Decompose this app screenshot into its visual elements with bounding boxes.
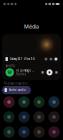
staticText: Réglages rapides	[3, 82, 27, 85]
button[interactable]: Wi-Fi	[3, 96, 15, 108]
button[interactable]: Location	[18, 111, 30, 123]
button[interactable]: Galaxy S21 Ultra 5G	[2, 55, 61, 63]
button[interactable]: Auto-rotate	[48, 96, 60, 108]
button[interactable]: Airplane mode	[33, 111, 45, 123]
staticText: Galaxy S21 Ultra 5G	[10, 57, 35, 61]
button[interactable]: Sortie audio	[2, 86, 31, 94]
button[interactable]: Flashlight	[3, 111, 15, 123]
button[interactable]: Next track	[55, 71, 57, 74]
button[interactable]: Bluetooth	[18, 96, 30, 108]
staticText: Média	[24, 23, 39, 30]
staticText: le piratage peut nuire	[16, 69, 35, 72]
button[interactable]: Play	[46, 69, 52, 75]
button[interactable]: Previous track	[41, 71, 44, 74]
button[interactable]: Dark mode	[18, 126, 30, 138]
button[interactable]: Sound	[33, 96, 45, 108]
button[interactable]: Screen record	[33, 126, 45, 138]
staticText: Booba	[16, 72, 25, 76]
button[interactable]: Battery saver	[3, 126, 15, 138]
button[interactable]: Hotspot	[48, 111, 60, 123]
staticText: Sortie audio	[9, 88, 26, 92]
staticText: Spotify	[5, 64, 14, 68]
button[interactable]: Do not disturb	[48, 126, 60, 138]
